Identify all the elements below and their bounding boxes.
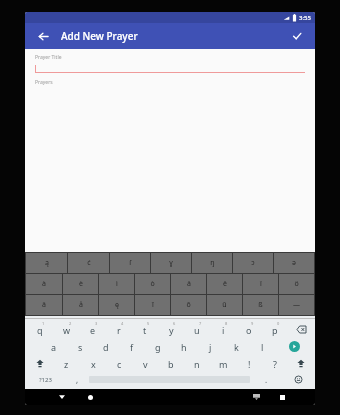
button[interactable]: l: [249, 338, 275, 355]
button[interactable]: Save prayer: [287, 26, 307, 46]
staticText: ū: [222, 300, 227, 310]
button[interactable]: ,: [65, 372, 89, 387]
button[interactable]: 3: [80, 321, 106, 338]
button[interactable]: ū: [207, 295, 242, 315]
staticText: a: [51, 341, 57, 353]
button[interactable]: ö: [279, 274, 314, 294]
button[interactable]: s: [67, 338, 93, 355]
staticText: l: [261, 341, 264, 353]
button[interactable]: 9: [236, 321, 262, 338]
button[interactable]: ë: [207, 274, 242, 294]
staticText: w: [63, 324, 71, 336]
button[interactable]: ɣ: [151, 253, 191, 273]
button[interactable]: å: [63, 295, 98, 315]
staticText: 8: [225, 321, 228, 326]
button[interactable]: h: [171, 338, 197, 355]
button[interactable]: m: [210, 355, 236, 372]
staticText: g: [155, 341, 161, 353]
button[interactable]: g: [145, 338, 171, 355]
staticText: ï: [260, 279, 262, 289]
button[interactable]: .: [250, 372, 282, 387]
button[interactable]: 7: [184, 321, 210, 338]
button[interactable]: k: [223, 338, 249, 355]
staticText: ć: [87, 258, 91, 268]
button[interactable]: ǎ: [26, 295, 62, 315]
staticText: ŋ: [210, 258, 215, 268]
button[interactable]: ò: [135, 274, 170, 294]
button[interactable]: —: [279, 295, 314, 315]
staticText: x: [91, 358, 96, 370]
staticText: ?123: [39, 376, 52, 384]
staticText: ǎ: [42, 300, 46, 310]
staticText: ō: [186, 300, 191, 310]
staticText: t: [143, 324, 147, 336]
button[interactable]: 8: [210, 321, 236, 338]
button[interactable]: Back: [33, 26, 53, 46]
button[interactable]: ɔ: [233, 253, 273, 273]
button[interactable]: Hide keyboard: [249, 390, 263, 404]
button[interactable]: ō: [171, 295, 206, 315]
button[interactable]: Home: [83, 390, 97, 404]
button[interactable]: a: [40, 338, 67, 355]
staticText: ò: [150, 279, 155, 289]
staticText: b: [168, 358, 174, 370]
staticText: q: [37, 324, 43, 336]
button[interactable]: d: [93, 338, 119, 355]
button[interactable]: ą: [26, 253, 67, 273]
button[interactable]: ä: [171, 274, 206, 294]
button[interactable]: à: [26, 274, 62, 294]
staticText: 0: [277, 321, 280, 326]
button[interactable]: ?: [262, 355, 288, 372]
button[interactable]: ß: [243, 295, 278, 315]
button[interactable]: !: [236, 355, 262, 372]
button[interactable]: è: [63, 274, 98, 294]
button[interactable]: ć: [68, 253, 109, 273]
button[interactable]: c: [106, 355, 132, 372]
staticText: o: [246, 324, 252, 336]
button[interactable]: ə: [274, 253, 314, 273]
button[interactable]: x: [80, 355, 106, 372]
staticText: n: [194, 358, 200, 370]
staticText: z: [64, 358, 69, 370]
button[interactable]: Enter: [275, 338, 314, 355]
button[interactable]: [35, 64, 305, 73]
button[interactable]: j: [197, 338, 223, 355]
staticText: v: [143, 358, 148, 370]
button[interactable]: 5: [132, 321, 158, 338]
staticText: ī: [152, 300, 154, 310]
button[interactable]: v: [132, 355, 158, 372]
button[interactable]: ?123: [26, 372, 65, 387]
staticText: 1: [42, 321, 45, 326]
button[interactable]: 2: [53, 321, 80, 338]
button[interactable]: Backspace: [288, 321, 314, 338]
button[interactable]: 4: [106, 321, 132, 338]
button[interactable]: Shift: [288, 355, 314, 372]
button[interactable]: ŋ: [192, 253, 232, 273]
button[interactable]: n: [184, 355, 210, 372]
button[interactable]: f: [119, 338, 145, 355]
staticText: 9: [251, 321, 254, 326]
staticText: p: [272, 324, 278, 336]
staticText: .: [265, 374, 268, 385]
staticText: ë: [223, 279, 227, 289]
button[interactable]: Emoji: [282, 372, 314, 387]
button[interactable]: 1: [26, 321, 53, 338]
staticText: è: [79, 279, 83, 289]
button[interactable]: Shift: [26, 355, 53, 372]
button[interactable]: b: [158, 355, 184, 372]
button[interactable]: z: [53, 355, 80, 372]
button[interactable]: Back: [55, 390, 69, 404]
button[interactable]: ſ: [110, 253, 150, 273]
button[interactable]: Recent apps: [275, 390, 289, 404]
button[interactable]: 0: [262, 321, 288, 338]
staticText: d: [103, 341, 109, 353]
staticText: j: [209, 341, 212, 353]
staticText: e: [90, 324, 96, 336]
button[interactable]: ę: [99, 295, 134, 315]
button[interactable]: 6: [158, 321, 184, 338]
